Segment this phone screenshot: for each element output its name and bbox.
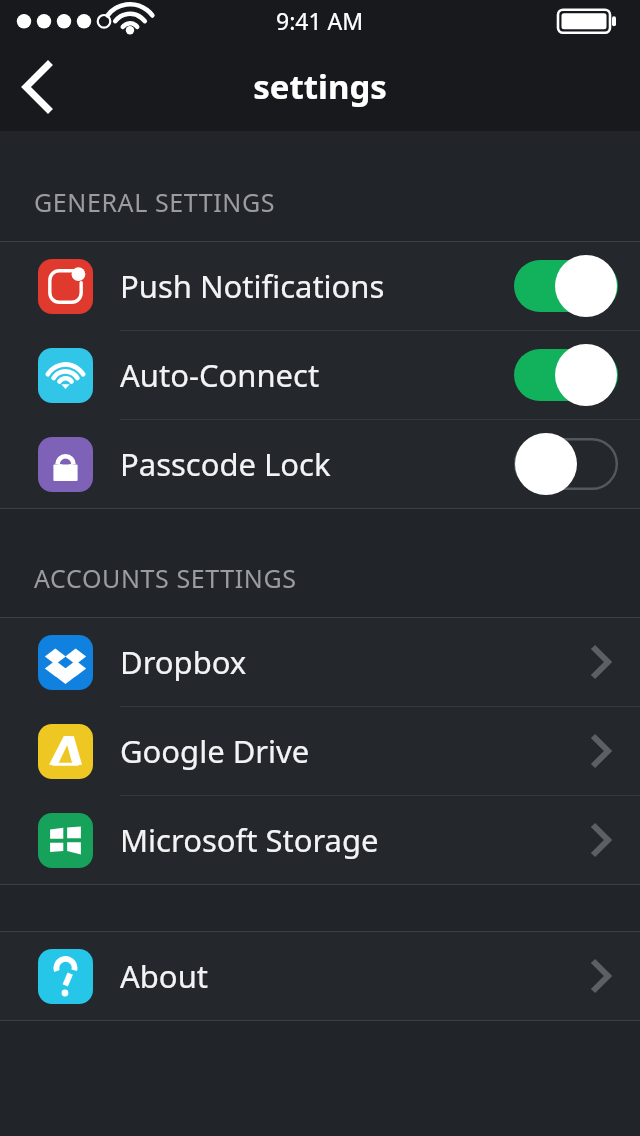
button[interactable]: Google Drive — [0, 707, 640, 795]
staticText: Microsoft Storage — [120, 819, 379, 861]
staticText: ACCOUNTS SETTINGS — [34, 561, 297, 595]
staticText: About — [120, 955, 208, 997]
staticText: Passcode Lock — [120, 443, 331, 485]
button[interactable]: Microsoft Storage — [0, 796, 640, 884]
button[interactable]: Auto-Connect — [0, 331, 640, 419]
button[interactable]: About — [0, 932, 640, 1020]
button[interactable]: Toggle on — [514, 257, 618, 315]
staticText: GENERAL SETTINGS — [34, 185, 276, 219]
button[interactable]: Passcode Lock — [0, 420, 640, 508]
button[interactable]: Toggle off — [514, 435, 618, 493]
button[interactable]: Push Notifications — [0, 242, 640, 330]
staticText: settings — [253, 64, 387, 109]
staticText: 9:41 AM — [276, 5, 364, 36]
button[interactable]: Toggle on — [514, 346, 618, 404]
staticText: Google Drive — [120, 730, 310, 772]
staticText: Dropbox — [120, 641, 247, 683]
button[interactable]: Back — [0, 41, 76, 131]
staticText: Auto-Connect — [120, 354, 320, 396]
button[interactable]: Dropbox — [0, 618, 640, 706]
staticText: Push Notifications — [120, 265, 385, 307]
